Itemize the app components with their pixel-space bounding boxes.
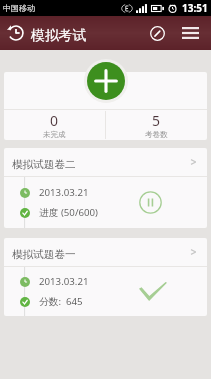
button[interactable]: 5 (106, 110, 207, 140)
staticText: 中国移动 (3, 3, 35, 13)
staticText: 未完成 (43, 130, 66, 139)
staticText: 考卷数 (145, 130, 168, 139)
staticText: 分数: 645 (39, 295, 83, 308)
button[interactable]: History (4, 21, 28, 45)
staticText: 0 (50, 111, 59, 130)
button[interactable]: 模拟试题卷二 (4, 148, 207, 228)
button[interactable]: Menu (177, 20, 203, 46)
staticText: 13:51 (182, 1, 208, 15)
button[interactable]: Add new exam (87, 62, 125, 100)
staticText: 进度 (50/600) (39, 206, 99, 219)
staticText: 2013.03.21 (39, 275, 89, 288)
button[interactable]: Edit (145, 21, 169, 45)
staticText: 模拟考试 (31, 27, 87, 44)
staticText: 模拟试题卷一 (12, 248, 76, 261)
button[interactable]: 模拟试题卷一 (4, 238, 207, 316)
staticText: 模拟试题卷二 (12, 158, 76, 171)
staticText: 2013.03.21 (39, 186, 89, 199)
button[interactable]: 0 (4, 110, 105, 140)
staticText: 5 (152, 111, 161, 130)
